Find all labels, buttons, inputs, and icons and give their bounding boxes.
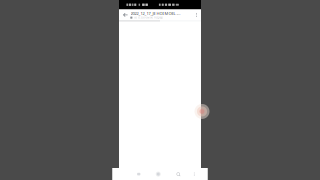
staticText: 2022_12_17_JE HOI MOEL -... [130, 11, 180, 16]
button[interactable]: Edit [153, 171, 164, 178]
button[interactable]: Search [173, 171, 184, 178]
button[interactable]: More options [189, 171, 200, 178]
button[interactable]: More options [192, 11, 201, 19]
staticText: 내 드라이브에 저장됨 [134, 16, 163, 19]
button[interactable]: Comment [133, 171, 144, 178]
button[interactable]: Back [119, 11, 131, 19]
